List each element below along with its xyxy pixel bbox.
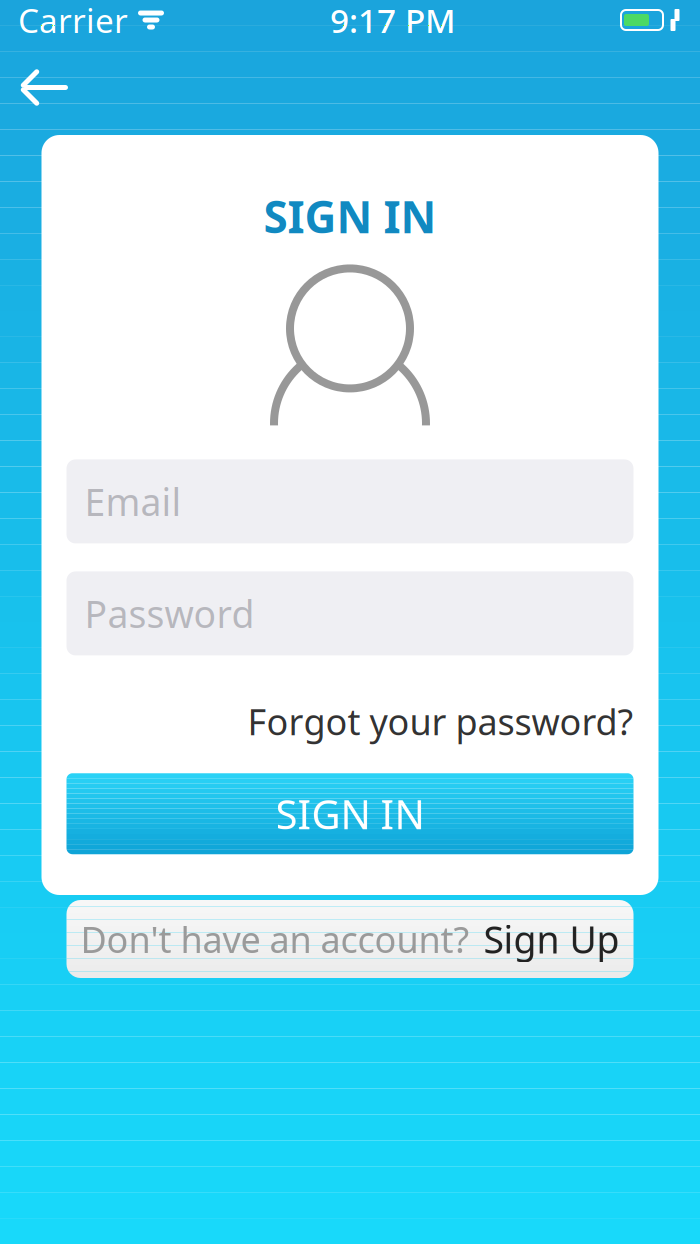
button[interactable]: Forgot your password? xyxy=(247,687,633,755)
staticText: SIGN IN xyxy=(275,787,424,840)
button[interactable]: Email xyxy=(66,459,633,543)
staticText: SIGN IN xyxy=(263,187,436,245)
staticText: 9:17 PM xyxy=(330,0,456,42)
button[interactable]: Back xyxy=(6,47,86,127)
button[interactable]: Password xyxy=(66,571,633,655)
staticText: Carrier xyxy=(18,0,128,42)
staticText: Don't have an account? xyxy=(80,915,469,963)
staticText: Forgot your password? xyxy=(247,697,633,745)
button[interactable]: SIGN IN xyxy=(66,773,633,854)
staticText: Sign Up xyxy=(483,914,619,964)
staticText: Password xyxy=(84,589,254,638)
button[interactable]: Don't have an account? xyxy=(66,900,633,978)
staticText: Email xyxy=(84,477,181,526)
